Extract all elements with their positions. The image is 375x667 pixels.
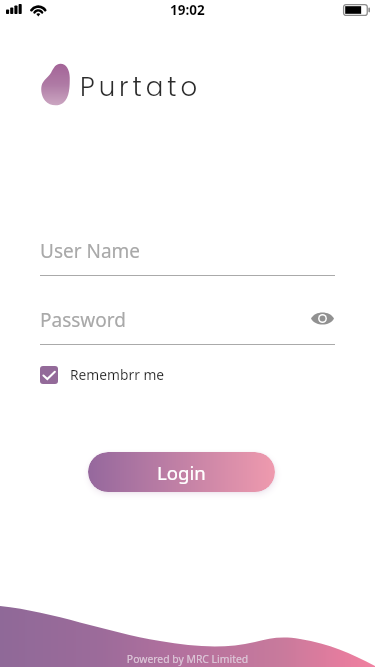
staticText: Login (157, 460, 206, 485)
staticText: Purtato (80, 69, 202, 105)
button[interactable]: Show password (307, 303, 337, 333)
staticText: Password (40, 307, 126, 333)
button[interactable]: Login (88, 452, 275, 492)
staticText: Remembrr me (70, 365, 165, 384)
staticText: Powered by MRC Limited (0, 652, 375, 666)
staticText: User Name (40, 238, 141, 264)
staticText: 19:02 (170, 1, 205, 19)
button[interactable]: Remembrr me (40, 365, 165, 384)
